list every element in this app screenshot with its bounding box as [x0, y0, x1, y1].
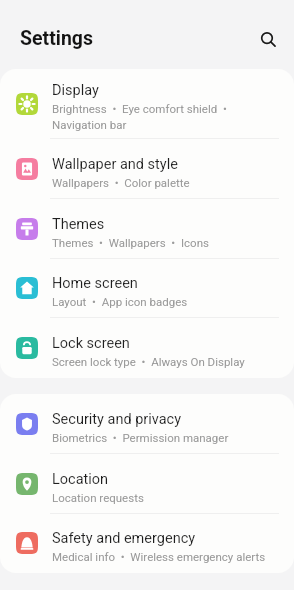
staticText: Themes [52, 216, 105, 233]
staticText: Wallpaper and style [52, 156, 178, 173]
button[interactable]: Display [0, 69, 294, 139]
staticText: Display [52, 82, 99, 99]
button[interactable]: Home screen [0, 258, 294, 318]
button[interactable]: Themes [0, 199, 294, 259]
staticText: Lock screen [52, 335, 130, 352]
button[interactable]: Safety and emergency [0, 513, 294, 573]
staticText: Layout • App icon badges [52, 295, 188, 308]
staticText: Safety and emergency [52, 530, 196, 547]
button[interactable]: Security and privacy [0, 394, 294, 454]
button[interactable]: Location [0, 454, 294, 514]
staticText: Location [52, 471, 109, 488]
staticText: Settings [20, 27, 93, 50]
staticText: Location requests [52, 491, 144, 504]
staticText: Themes • Wallpapers • Icons [52, 236, 209, 249]
button[interactable]: Wallpaper and style [0, 139, 294, 199]
staticText: Medical info • Wireless emergency alerts [52, 550, 266, 563]
button[interactable]: Search [248, 20, 286, 58]
staticText: Wallpapers • Color palette [52, 176, 190, 189]
button[interactable]: Lock screen [0, 318, 294, 378]
staticText: Biometrics • Permission manager [52, 431, 229, 444]
staticText: Security and privacy [52, 411, 182, 428]
staticText: Brightness • Eye comfort shield • Naviga… [52, 102, 270, 132]
staticText: Screen lock type • Always On Display [52, 355, 245, 368]
staticText: Home screen [52, 275, 138, 292]
